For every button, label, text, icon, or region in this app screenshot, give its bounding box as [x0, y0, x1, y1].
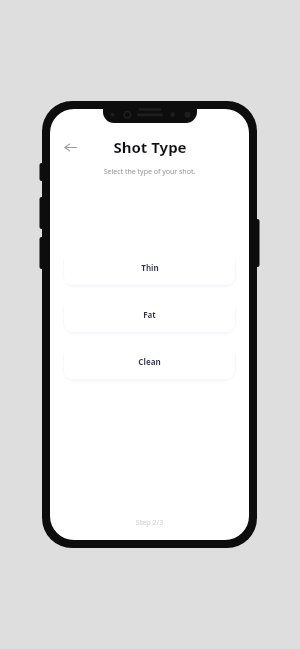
button[interactable]: Fat	[64, 296, 235, 332]
staticText: Select the type of your shot.	[50, 167, 249, 177]
button[interactable]: Clean	[64, 343, 235, 379]
staticText: Thin	[141, 262, 159, 273]
staticText: Fat	[143, 309, 156, 320]
button[interactable]: Thin	[64, 249, 235, 285]
staticText: Step 2/3	[50, 518, 249, 528]
staticText: Shot Type	[113, 137, 187, 157]
staticText: Clean	[138, 356, 161, 367]
button[interactable]: Back	[60, 137, 80, 157]
